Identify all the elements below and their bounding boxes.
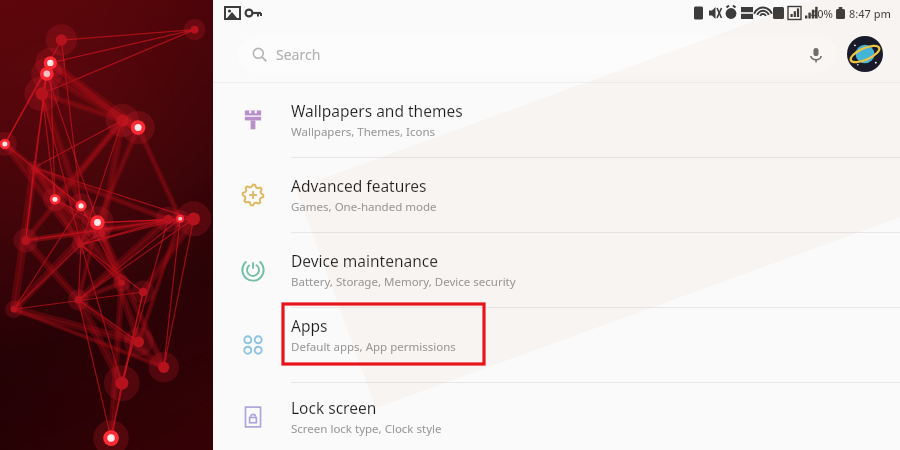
staticText: Games, One-handed mode: [291, 199, 437, 215]
button[interactable]: Device maintenance: [213, 233, 900, 307]
staticText: Search: [276, 45, 321, 64]
staticText: 8:47 pm: [849, 6, 891, 21]
button[interactable]: Advanced features: [213, 158, 900, 232]
staticText: Wallpapers, Themes, Icons: [291, 124, 436, 140]
button[interactable]: Apps: [213, 308, 900, 382]
staticText: Default apps, App permissions: [291, 339, 456, 355]
button[interactable]: Lock screen: [213, 383, 900, 450]
staticText: 40%: [811, 6, 833, 21]
button[interactable]: Voice search: [801, 40, 831, 70]
staticText: Apps: [291, 315, 328, 336]
staticText: Battery, Storage, Memory, Device securit…: [291, 274, 516, 290]
button[interactable]: Wallpapers and themes: [213, 83, 900, 157]
staticText: Device maintenance: [291, 250, 438, 271]
staticText: Screen lock type, Clock style: [291, 421, 442, 437]
staticText: Advanced features: [291, 175, 427, 196]
staticText: Wallpapers and themes: [291, 100, 463, 121]
button[interactable]: Search: [238, 36, 837, 73]
button[interactable]: Account: [847, 36, 883, 72]
staticText: Lock screen: [291, 397, 377, 418]
